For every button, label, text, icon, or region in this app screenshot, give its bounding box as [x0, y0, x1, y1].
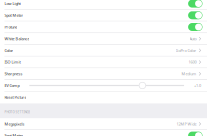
button[interactable]: EV Comp — [0, 80, 207, 92]
staticText: +1.0 — [194, 83, 201, 88]
staticText: Color — [4, 48, 13, 53]
staticText: Reset Picture — [4, 95, 26, 100]
button[interactable]: White Balance — [0, 33, 207, 45]
staticText: PHOTO SETTINGS — [4, 110, 30, 114]
staticText: EV Comp — [4, 83, 19, 88]
button[interactable]: Low Light — [0, 0, 207, 10]
button[interactable]: Spot Meter — [0, 130, 207, 136]
button[interactable]: Protune — [0, 21, 207, 33]
button[interactable]: Color — [0, 45, 207, 57]
staticText: 1600 — [188, 59, 196, 65]
button[interactable]: Megapixels — [0, 118, 207, 130]
button[interactable]: Spot Meter — [0, 10, 207, 21]
staticText: Medium — [181, 71, 196, 76]
staticText: Auto — [189, 36, 196, 41]
staticText: Spot Meter — [4, 133, 23, 136]
button[interactable]: Sharpness — [0, 68, 207, 80]
staticText: 12MP Wide — [176, 121, 196, 127]
staticText: Spot Meter — [4, 13, 23, 18]
button[interactable]: ISO Limit — [0, 57, 207, 68]
staticText: White Balance — [4, 36, 29, 41]
staticText: Low Light — [4, 1, 20, 6]
button[interactable]: Reset Picture — [0, 92, 207, 103]
staticText: Megapixels — [4, 121, 24, 127]
staticText: Protune — [4, 24, 17, 30]
staticText: Sharpness — [4, 71, 22, 76]
staticText: GoPro Color — [175, 48, 196, 53]
staticText: ISO Limit — [4, 59, 20, 65]
